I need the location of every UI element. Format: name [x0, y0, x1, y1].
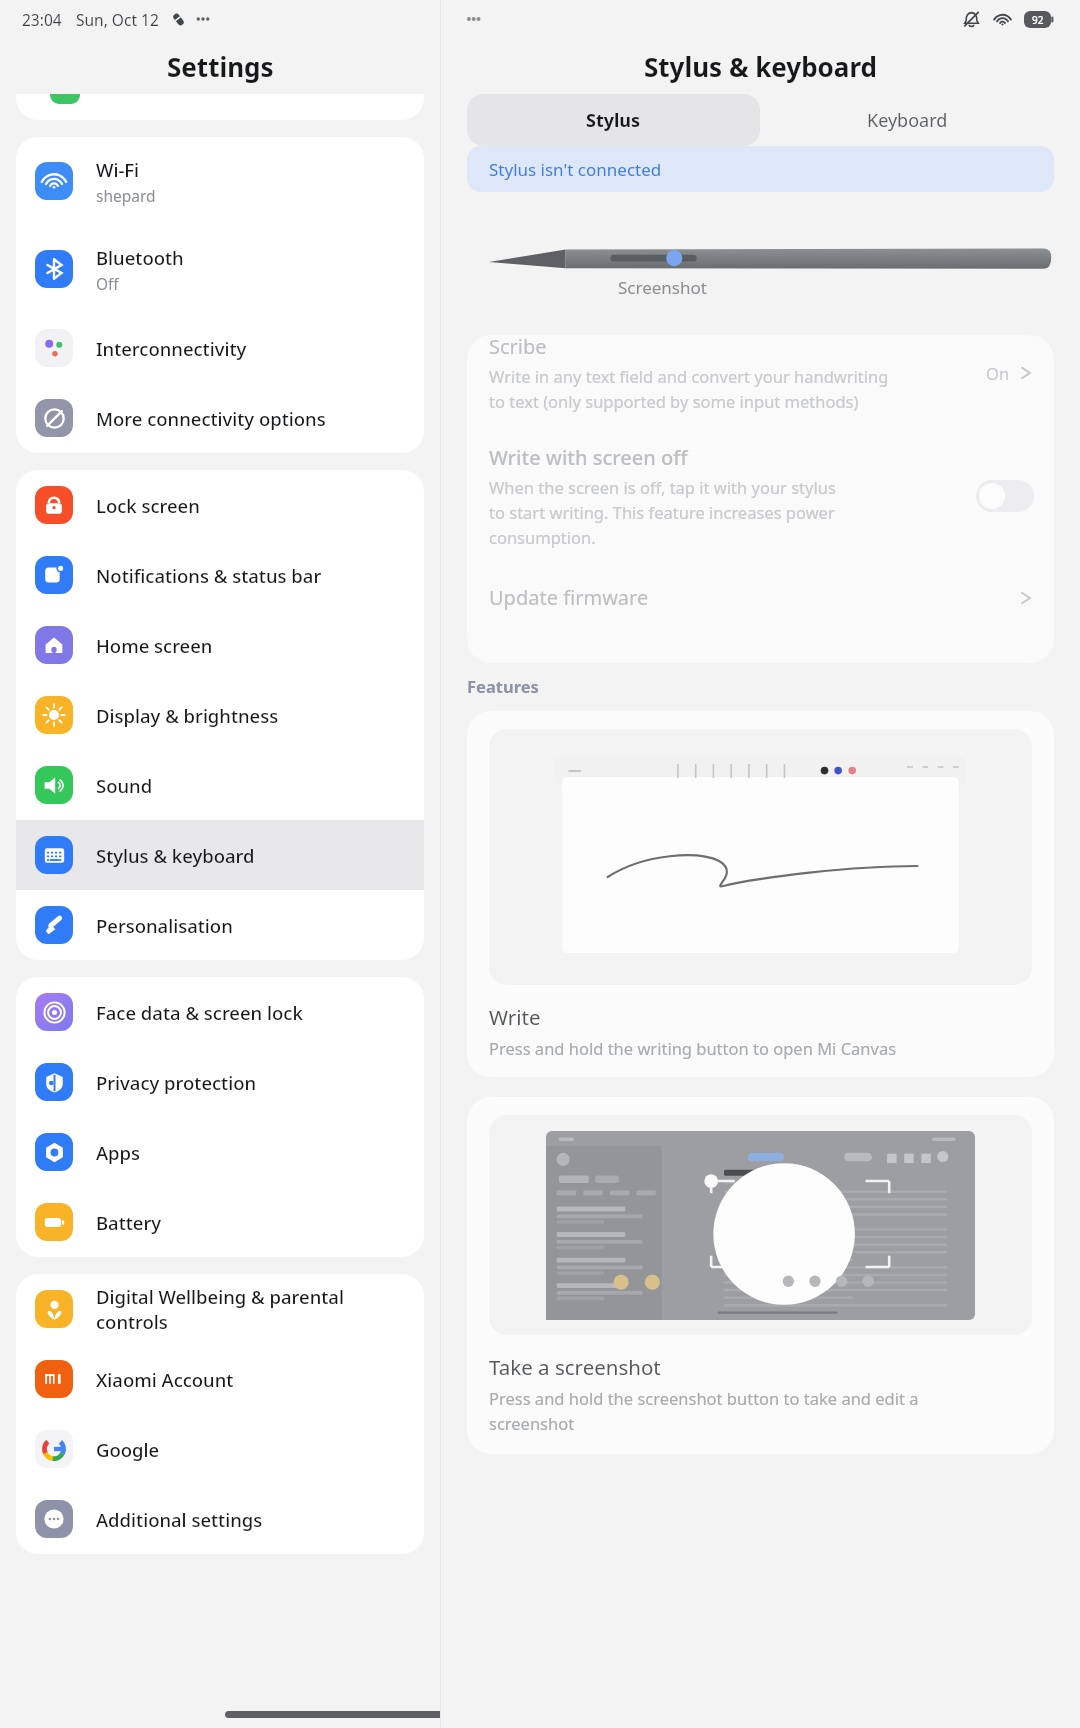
button[interactable]: Update firmware	[467, 566, 1054, 637]
staticText: Write	[489, 1003, 541, 1031]
staticText: Notifications & status bar	[96, 563, 322, 588]
button[interactable]: More connectivity options	[16, 383, 424, 453]
button[interactable]: Home screen	[16, 610, 424, 680]
staticText: Settings	[167, 49, 274, 84]
button[interactable]: Wi-Fi	[16, 137, 424, 225]
button[interactable]: Display & brightness	[16, 680, 424, 750]
staticText: Take a screenshot	[489, 1353, 661, 1381]
button[interactable]: Lock screen	[16, 470, 424, 540]
staticText: Google	[96, 1437, 160, 1462]
button[interactable]: Write	[467, 711, 1054, 1077]
staticText: Stylus & keyboard	[96, 843, 255, 868]
button[interactable]: Privacy protection	[16, 1047, 424, 1117]
staticText: Scribe	[489, 335, 547, 360]
staticText: Press and hold the writing button to ope…	[489, 1037, 897, 1059]
staticText: Stylus & keyboard	[644, 49, 877, 84]
staticText: Press and hold the screenshot button to …	[489, 1387, 919, 1434]
staticText: Write in any text field and convert your…	[489, 365, 889, 412]
staticText: Privacy protection	[96, 1070, 257, 1095]
staticText: More connectivity options	[96, 406, 326, 431]
staticText: Screenshot	[618, 276, 707, 299]
button[interactable]: Google	[16, 1414, 424, 1484]
staticText: Xiaomi Account	[96, 1367, 234, 1392]
staticText: Keyboard	[867, 108, 948, 133]
button[interactable]: Face data & screen lock	[16, 977, 424, 1047]
button[interactable]: Take a screenshot	[467, 1097, 1054, 1454]
staticText: Features	[467, 675, 539, 697]
button[interactable]: Additional settings	[16, 1484, 424, 1554]
staticText: shepard	[96, 185, 156, 206]
staticText: Battery	[96, 1210, 162, 1235]
staticText: Additional settings	[96, 1507, 263, 1532]
button[interactable]: Stylus	[467, 94, 760, 146]
staticText: Lock screen	[96, 493, 200, 518]
button[interactable]: Stylus & keyboard	[16, 820, 424, 890]
staticText: Write with screen off	[489, 444, 688, 471]
button[interactable]: Scribe	[467, 335, 1054, 434]
staticText: Off	[96, 273, 119, 294]
staticText: Personalisation	[96, 913, 233, 938]
staticText: Stylus	[586, 108, 641, 133]
staticText: Bluetooth	[96, 245, 184, 270]
button[interactable]: Apps	[16, 1117, 424, 1187]
staticText: Sound	[96, 773, 153, 798]
button[interactable]: Interconnectivity	[16, 313, 424, 383]
button[interactable]: Keyboard	[760, 94, 1054, 146]
button[interactable]: Sound	[16, 750, 424, 820]
button[interactable]: Personalisation	[16, 890, 424, 960]
staticText: Wi-Fi	[96, 157, 140, 182]
staticText: On	[986, 362, 1010, 384]
staticText: When the screen is off, tap it with your…	[489, 476, 836, 548]
staticText: Apps	[96, 1140, 141, 1165]
staticText: Face data & screen lock	[96, 1000, 303, 1025]
button[interactable]: Battery	[16, 1187, 424, 1257]
staticText: 23:04	[22, 9, 62, 30]
button[interactable]: Digital Wellbeing & parental controls	[16, 1274, 424, 1344]
button[interactable]: Write with screen off	[467, 434, 1054, 566]
staticText: Home screen	[96, 633, 213, 658]
staticText: 92	[1032, 13, 1044, 27]
button[interactable]: Bluetooth	[16, 225, 424, 313]
button[interactable]: Notifications & status bar	[16, 540, 424, 610]
staticText: Digital Wellbeing & parental controls	[96, 1284, 344, 1334]
staticText: Interconnectivity	[96, 336, 247, 361]
staticText: Display & brightness	[96, 703, 279, 728]
staticText: Sun, Oct 12	[76, 9, 159, 30]
staticText: Update firmware	[489, 584, 1018, 611]
staticText: Stylus isn't connected	[489, 158, 662, 181]
button[interactable]: Xiaomi Account	[16, 1344, 424, 1414]
